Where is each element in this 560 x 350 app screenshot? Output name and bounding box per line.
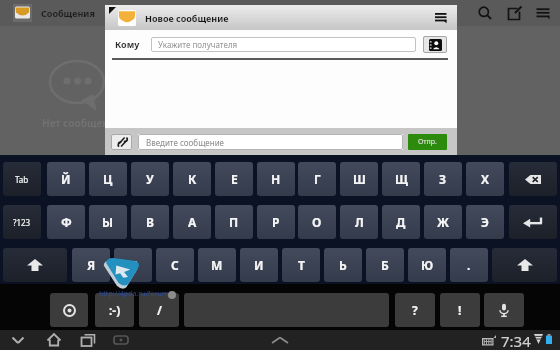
staticText: Ш bbox=[353, 171, 366, 187]
button[interactable]: Г bbox=[298, 162, 336, 196]
button[interactable]: Р bbox=[257, 205, 295, 239]
button[interactable]: mic bbox=[484, 293, 524, 327]
staticText: ! bbox=[458, 302, 462, 318]
staticText: Ф bbox=[61, 214, 72, 230]
button[interactable]: Ж bbox=[424, 205, 462, 239]
button[interactable]: / bbox=[139, 293, 179, 327]
staticText: Ы bbox=[102, 214, 114, 230]
button[interactable]: З bbox=[424, 162, 462, 196]
button[interactable]: Б bbox=[366, 248, 404, 282]
button[interactable]: В bbox=[131, 205, 169, 239]
staticText: http://4pda.ru/forum bbox=[99, 289, 169, 299]
button[interactable]: ! bbox=[440, 293, 480, 327]
staticText: П bbox=[229, 214, 239, 230]
staticText: Ю bbox=[421, 257, 434, 273]
button[interactable]: ? bbox=[395, 293, 435, 327]
staticText: М bbox=[211, 257, 223, 273]
button[interactable]: . bbox=[450, 248, 488, 282]
button[interactable]: М bbox=[198, 248, 236, 282]
staticText: 7:34 bbox=[501, 331, 531, 350]
button[interactable]: Я bbox=[72, 248, 110, 282]
staticText: И bbox=[254, 257, 264, 273]
button[interactable]: Ч bbox=[114, 248, 152, 282]
staticText: Ж bbox=[437, 214, 449, 230]
button[interactable]: У bbox=[131, 162, 169, 196]
button[interactable]: Ы bbox=[89, 205, 127, 239]
staticText: Р bbox=[272, 214, 280, 230]
staticText: Т bbox=[298, 257, 305, 273]
button[interactable]: П bbox=[215, 205, 253, 239]
button[interactable]: Т bbox=[282, 248, 320, 282]
staticText: Л bbox=[355, 214, 364, 230]
staticText: Введите сообщение bbox=[146, 137, 225, 148]
staticText: Э bbox=[481, 214, 489, 230]
staticText: Ч bbox=[129, 257, 138, 273]
staticText: Й bbox=[61, 171, 71, 187]
button[interactable]: Н bbox=[257, 162, 295, 196]
button[interactable]: Screenshot bbox=[109, 331, 133, 349]
button[interactable]: Tab bbox=[3, 162, 41, 196]
button[interactable]: shift bbox=[3, 248, 67, 282]
button[interactable]: Attach bbox=[111, 134, 132, 150]
button[interactable]: backspace bbox=[509, 162, 557, 196]
button[interactable]: Укажите получателя bbox=[151, 37, 416, 52]
staticText: :-) bbox=[109, 302, 121, 318]
staticText: Укажите получателя bbox=[158, 39, 238, 50]
button[interactable]: Введите сообщение bbox=[138, 134, 403, 150]
button[interactable]: Search bbox=[472, 0, 498, 26]
button[interactable]: Щ bbox=[382, 162, 420, 196]
staticText: . bbox=[467, 257, 471, 273]
button[interactable]: Home bbox=[42, 331, 66, 349]
button[interactable]: ?123 bbox=[3, 205, 41, 239]
button[interactable]: Й bbox=[47, 162, 85, 196]
button[interactable]: :-) bbox=[95, 293, 134, 327]
staticText: Х bbox=[481, 171, 490, 187]
button[interactable]: More options bbox=[530, 0, 556, 26]
staticText: Е bbox=[231, 171, 238, 187]
button[interactable]: Compose bbox=[501, 0, 527, 26]
staticText: В bbox=[146, 214, 154, 230]
button[interactable]: Back bbox=[6, 331, 30, 349]
button[interactable]: Recent apps bbox=[76, 331, 100, 349]
staticText: Ь bbox=[339, 257, 347, 273]
staticText: Н bbox=[271, 171, 281, 187]
staticText: ?123 bbox=[13, 217, 31, 228]
button[interactable]: Э bbox=[466, 205, 504, 239]
staticText: А bbox=[188, 214, 197, 230]
button[interactable]: Д bbox=[382, 205, 420, 239]
staticText: Ц bbox=[103, 171, 113, 187]
button[interactable]: Л bbox=[340, 205, 378, 239]
button[interactable]: Ц bbox=[89, 162, 127, 196]
staticText: К bbox=[188, 171, 197, 187]
button[interactable]: Отпр. bbox=[408, 134, 447, 150]
staticText: Д bbox=[396, 214, 406, 230]
button[interactable]: shift bbox=[492, 248, 557, 282]
staticText: Отпр. bbox=[418, 137, 437, 147]
button[interactable]: А bbox=[173, 205, 211, 239]
button[interactable]: enter bbox=[509, 205, 557, 239]
staticText: Кому bbox=[115, 38, 140, 50]
staticText: Сообщения bbox=[41, 7, 95, 19]
button[interactable]: Ь bbox=[324, 248, 362, 282]
staticText: З bbox=[439, 171, 447, 187]
staticText: Щ bbox=[395, 171, 408, 187]
button[interactable]: Menu bbox=[430, 5, 452, 30]
button[interactable]: Е bbox=[215, 162, 253, 196]
button[interactable]: С bbox=[156, 248, 194, 282]
button[interactable]: Ю bbox=[408, 248, 446, 282]
button[interactable]: Х bbox=[466, 162, 504, 196]
button[interactable]: Pick contact bbox=[423, 36, 447, 53]
staticText: У bbox=[146, 171, 154, 187]
button[interactable]: К bbox=[173, 162, 211, 196]
staticText: О bbox=[312, 214, 322, 230]
staticText: Tab bbox=[15, 174, 29, 185]
staticText: С bbox=[171, 257, 179, 273]
button[interactable]: И bbox=[240, 248, 278, 282]
button[interactable]: Ф bbox=[47, 205, 85, 239]
staticText: / bbox=[157, 302, 162, 318]
button[interactable]: Ш bbox=[340, 162, 378, 196]
button[interactable]: settings bbox=[50, 293, 88, 327]
button[interactable]: О bbox=[298, 205, 336, 239]
staticText: Нет сообщений bbox=[42, 116, 123, 130]
